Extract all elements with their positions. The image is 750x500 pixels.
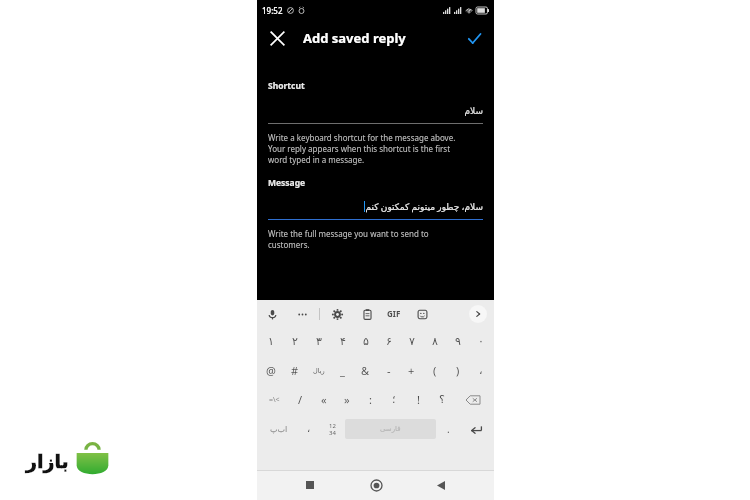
staticText: فارسی [380,425,401,433]
staticText: ) [456,363,460,378]
button[interactable]: Expand toolbar [469,305,487,323]
button[interactable]: Recents [297,472,323,498]
staticText: ۸ [432,335,438,348]
button[interactable]: + [400,356,423,385]
button[interactable]: فارسی [345,419,436,439]
button[interactable]: ۰ [469,327,492,356]
button[interactable]: اب‌پ [260,414,297,444]
staticText: =\< [269,395,280,405]
button[interactable]: 12 34 [320,414,345,444]
button[interactable]: ۹ [446,327,469,356]
button[interactable]: ۶ [377,327,400,356]
button[interactable]: ۴ [331,327,354,356]
staticText: بازار [26,450,69,472]
staticText: 19:52 [262,5,283,16]
staticText: : [369,392,372,407]
staticText: سلام، چطور میتونم کمکتون کنم [365,200,483,212]
staticText: @ [266,363,276,378]
staticText: ۲ [292,335,298,348]
staticText: ( [433,363,437,378]
button[interactable]: Enter [461,414,491,444]
staticText: Write a keyboard shortcut for the messag… [268,132,456,165]
button[interactable]: Save [460,24,488,52]
button[interactable]: . [436,414,461,444]
button[interactable]: @ [259,356,283,385]
staticText: » [344,392,350,407]
button[interactable]: Clipboard [359,306,375,322]
staticText: 12 34 [329,422,336,437]
staticText: ؛ [392,393,396,406]
button[interactable]: ۱ [259,327,283,356]
button[interactable]: ۸ [423,327,446,356]
button[interactable]: Back [428,472,454,498]
staticText: - [387,363,391,378]
button[interactable]: « [312,385,335,414]
button[interactable]: ۲ [283,327,307,356]
button[interactable]: & [354,356,377,385]
staticText: GIF [387,308,401,319]
staticText: Write the full message you want to send … [268,228,429,250]
staticText: ۷ [409,335,415,348]
button[interactable]: Home [363,472,389,498]
button[interactable]: سلام، چطور میتونم کمکتون کنم [268,200,483,212]
staticText: « [321,392,327,407]
button[interactable]: : [358,385,382,414]
staticText: ریال [313,367,325,375]
staticText: ۴ [340,335,346,348]
staticText: ۵ [363,335,369,348]
staticText: Shortcut [268,80,305,92]
staticText: _ [340,363,345,378]
staticText: + [408,363,415,378]
button[interactable]: More options [294,306,310,322]
staticText: ، [307,423,311,435]
button[interactable]: ریال [307,356,331,385]
button[interactable]: Close [263,24,291,52]
staticText: ، [479,364,483,377]
button[interactable]: Stickers [414,306,430,322]
staticText: سلام [464,106,483,116]
button[interactable]: ( [423,356,446,385]
staticText: ۱ [268,335,274,348]
button[interactable]: =\< [259,385,289,414]
staticText: ! [417,392,420,407]
staticText: ۹ [455,335,461,348]
button[interactable]: GIF [387,308,401,319]
button[interactable]: Voice input [264,306,280,322]
button[interactable]: ؟ [430,385,454,414]
button[interactable]: Settings [329,306,345,322]
button[interactable]: ۷ [400,327,423,356]
button[interactable]: ؛ [382,385,406,414]
button[interactable]: _ [331,356,354,385]
button[interactable]: ، [469,356,492,385]
button[interactable]: Bazaar [8,429,126,492]
button[interactable]: » [335,385,358,414]
button[interactable]: # [283,356,307,385]
staticText: Message [268,177,306,189]
staticText: ۰ [478,335,484,348]
staticText: اب‌پ [270,425,288,434]
staticText: Add saved reply [303,29,406,47]
staticText: ؟ [439,393,445,406]
button[interactable]: ۳ [307,327,331,356]
button[interactable]: ! [406,385,430,414]
staticText: ۳ [316,335,322,348]
button[interactable]: ، [297,414,320,444]
button[interactable]: ) [446,356,469,385]
button[interactable]: / [289,385,312,414]
staticText: ۶ [386,335,392,348]
staticText: & [361,363,370,378]
staticText: # [291,363,299,378]
button[interactable]: Backspace [454,385,492,414]
button[interactable]: ۵ [354,327,377,356]
button[interactable]: سلام [268,106,483,116]
staticText: / [298,392,303,407]
staticText: . [447,422,450,436]
button[interactable]: - [377,356,400,385]
